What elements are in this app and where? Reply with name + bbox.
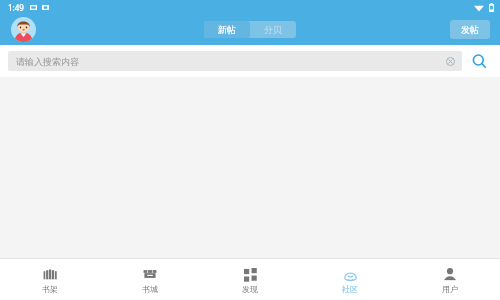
button[interactable]: 发现: [200, 259, 300, 300]
staticText: 用户: [442, 284, 458, 294]
button[interactable]: 书架: [0, 259, 100, 300]
staticText: 1:49: [8, 2, 24, 13]
staticText: 新帖: [218, 24, 236, 35]
staticText: 发现: [242, 284, 258, 294]
staticText: 分贝: [264, 24, 282, 35]
staticText: 请输入搜索内容: [16, 56, 440, 67]
staticText: 书架: [42, 284, 58, 294]
button[interactable]: Profile avatar: [11, 17, 36, 42]
button[interactable]: 新帖: [204, 21, 250, 38]
button[interactable]: 发帖: [450, 20, 490, 39]
staticText: 书城: [142, 284, 158, 294]
button[interactable]: Search: [466, 48, 492, 74]
staticText: 社区: [342, 284, 358, 294]
button[interactable]: 社区: [300, 259, 400, 300]
button[interactable]: Clear search: [440, 51, 460, 71]
button[interactable]: 请输入搜索内容: [8, 51, 462, 71]
button[interactable]: 用户: [400, 259, 500, 300]
staticText: 发帖: [461, 24, 479, 35]
button[interactable]: 书城: [100, 259, 200, 300]
button[interactable]: 分贝: [250, 21, 296, 38]
